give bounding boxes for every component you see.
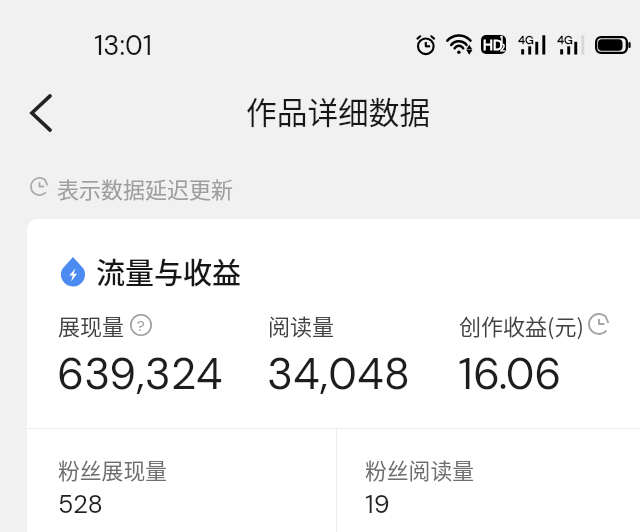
staticText: 19 <box>365 488 390 521</box>
staticText: 作品详细数据 <box>246 88 431 132</box>
staticText: HD <box>483 36 503 54</box>
staticText: 2 <box>500 43 506 54</box>
staticText: 阅读量 <box>268 309 335 341</box>
staticText: ? <box>137 317 145 335</box>
staticText: 表示数据延迟更新 <box>57 172 234 204</box>
staticText: 粉丝阅读量 <box>365 454 474 486</box>
staticText: 16.06 <box>458 346 562 403</box>
staticText: 639,324 <box>57 346 223 403</box>
staticText: 4G <box>557 33 573 48</box>
staticText: 528 <box>58 488 104 521</box>
staticText: 展现量 <box>58 309 125 341</box>
staticText: 创作收益(元) <box>459 309 584 341</box>
staticText: 1 <box>500 35 503 46</box>
staticText: 13:01 <box>94 28 152 63</box>
button[interactable]: What is this <box>130 314 152 336</box>
staticText: 4G <box>518 33 534 48</box>
staticText: 流量与收益 <box>96 250 242 292</box>
button[interactable]: Back <box>13 85 69 141</box>
staticText: 粉丝展现量 <box>58 454 167 486</box>
staticText: 34,048 <box>267 346 410 403</box>
